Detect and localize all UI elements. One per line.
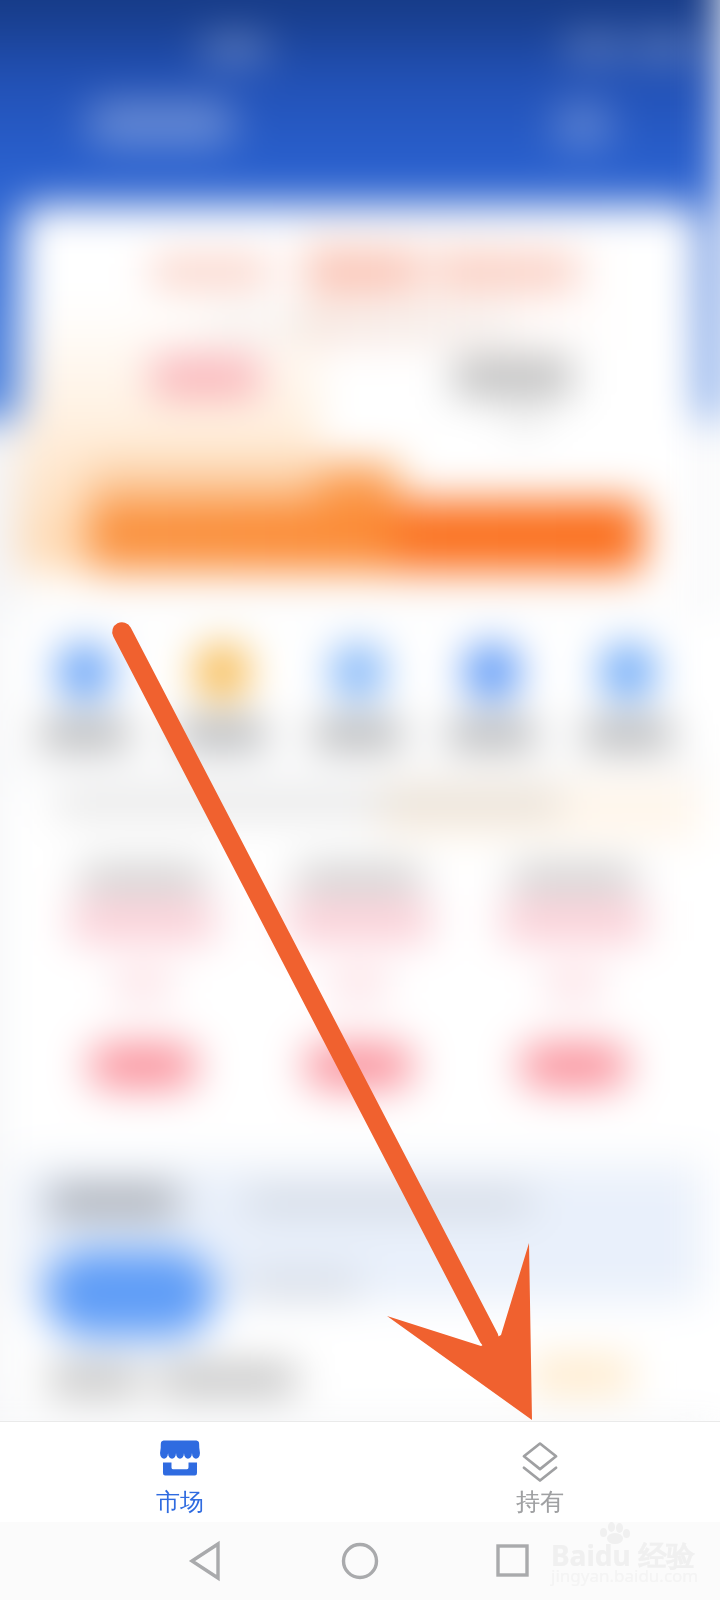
button[interactable]: 持有 (360, 1421, 720, 1522)
staticText: jingyan.baidu.com (551, 1564, 699, 1587)
button[interactable]: Back (165, 1530, 245, 1592)
staticText: Baidu 经验 (551, 1536, 694, 1574)
staticText: 市场 (156, 1487, 204, 1517)
button[interactable]: 市场 (0, 1421, 360, 1522)
button[interactable]: Home (320, 1530, 400, 1592)
button[interactable]: Recents (472, 1530, 552, 1592)
staticText: 持有 (516, 1487, 564, 1517)
